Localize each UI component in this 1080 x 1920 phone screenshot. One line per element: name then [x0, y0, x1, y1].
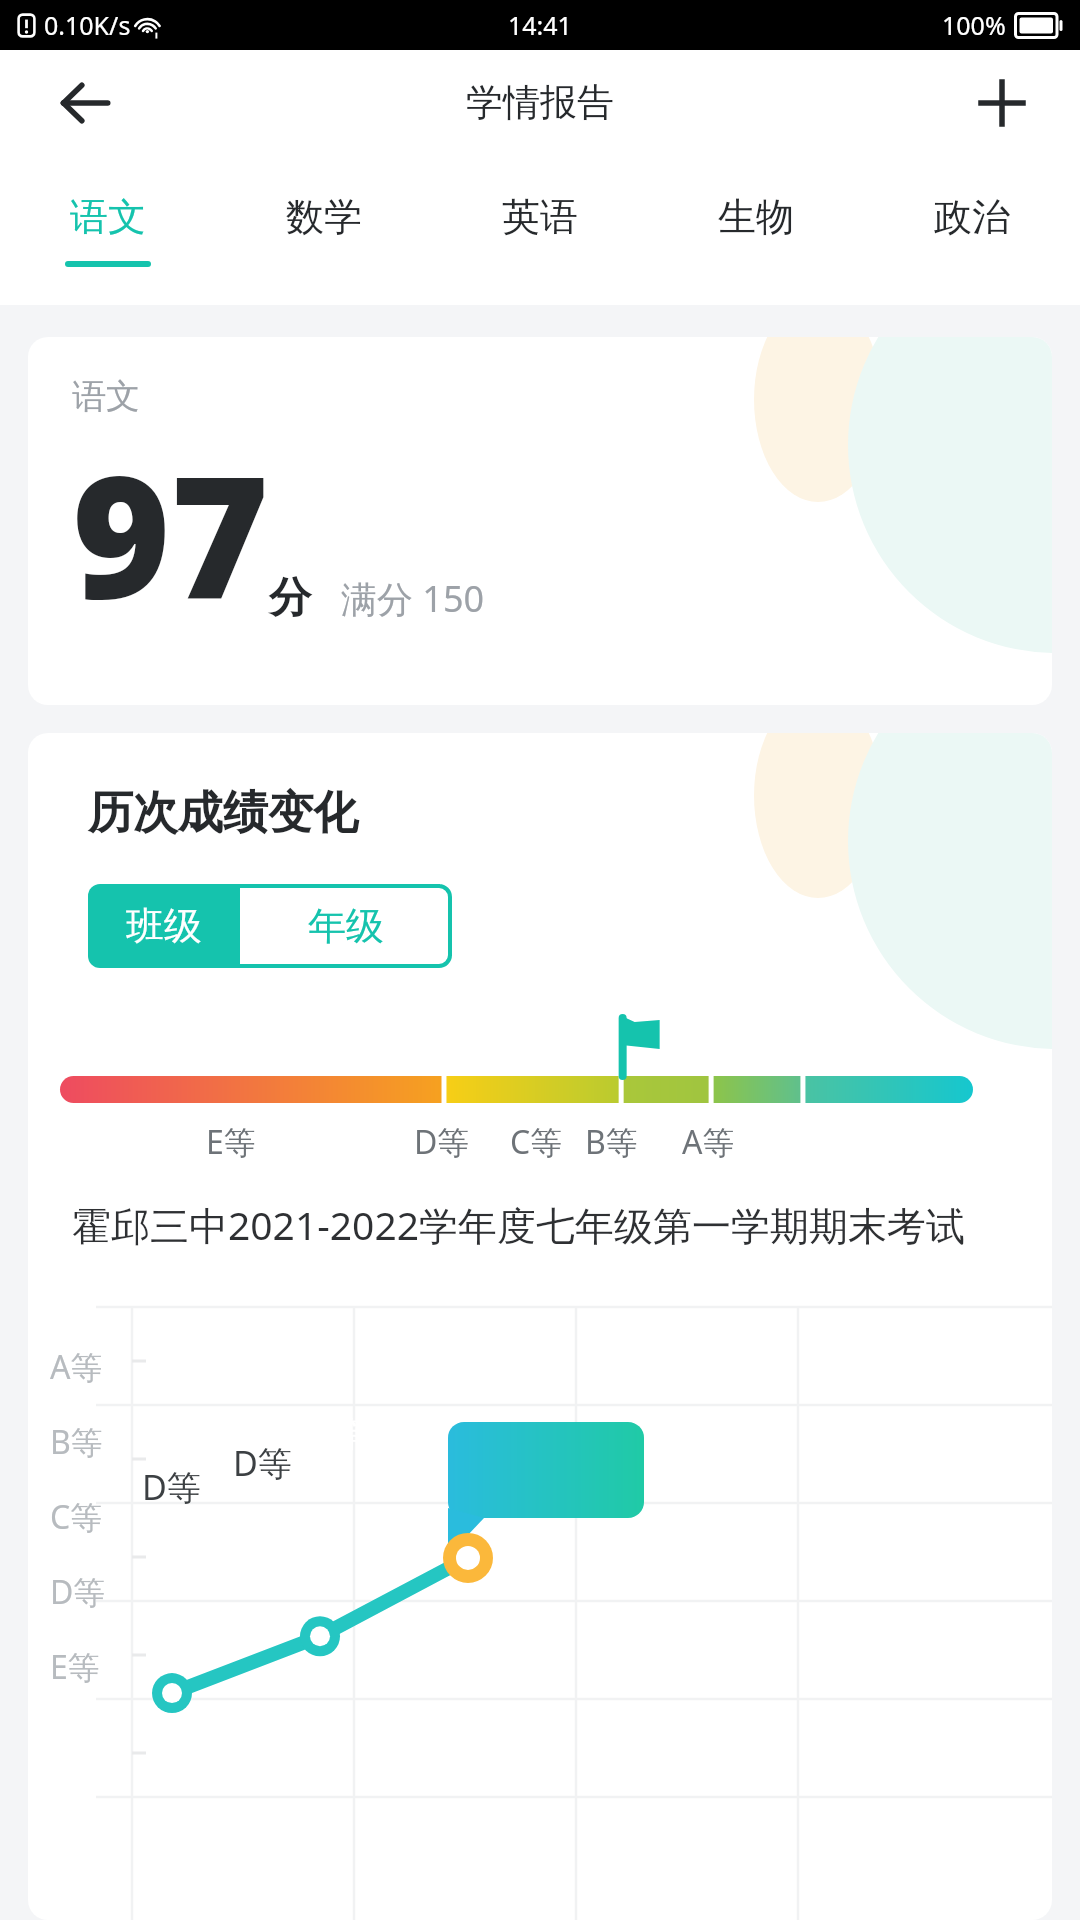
staticText: A等 [682, 1120, 735, 1164]
staticText: A等 [50, 1345, 103, 1389]
button[interactable]: 语文 [28, 337, 1052, 705]
staticText: 0.10K/s [44, 8, 131, 42]
staticText: 政治 [934, 193, 1010, 241]
staticText: B等 [585, 1120, 638, 1164]
staticText: C等 [510, 1120, 563, 1164]
staticText: 满分 150 [341, 574, 485, 623]
staticText: 语文 [72, 375, 140, 418]
staticText: 分 [269, 572, 311, 625]
staticText: 霍邱三中2021-2022学年度七年级第一学期期末考试 [72, 1198, 966, 1251]
staticText: D等 [233, 1440, 292, 1486]
staticText: 历次成绩变化 [88, 785, 358, 842]
staticText: 学情报告 [466, 79, 614, 126]
staticText: 语文 [70, 193, 146, 241]
button[interactable]: 生物 [648, 155, 864, 305]
staticText: D等 [414, 1120, 470, 1164]
staticText: B等 [50, 1420, 103, 1464]
staticText: E等 [206, 1120, 256, 1164]
staticText: C等 [50, 1495, 103, 1539]
staticText: D等 [50, 1570, 106, 1614]
staticText: 14:41 [508, 8, 572, 42]
button[interactable]: Back [38, 57, 130, 149]
staticText: 数学 [286, 193, 362, 241]
staticText: 97 [72, 418, 269, 647]
staticText: 100% [942, 8, 1006, 42]
button[interactable]: 数学 [216, 155, 432, 305]
button[interactable]: 英语 [432, 155, 648, 305]
staticText: D等 [142, 1464, 201, 1510]
staticText: 年级 [308, 902, 384, 950]
staticText: 班级 [126, 902, 202, 950]
button[interactable]: 班级 [88, 884, 240, 968]
button[interactable]: 年级 [240, 884, 452, 968]
button[interactable]: Add report [956, 57, 1048, 149]
button[interactable]: 语文 [0, 155, 216, 305]
staticText: E等 [50, 1645, 100, 1689]
staticText: 英语 [502, 193, 578, 241]
button[interactable]: 政治 [864, 155, 1080, 305]
staticText: 生物 [718, 193, 794, 241]
